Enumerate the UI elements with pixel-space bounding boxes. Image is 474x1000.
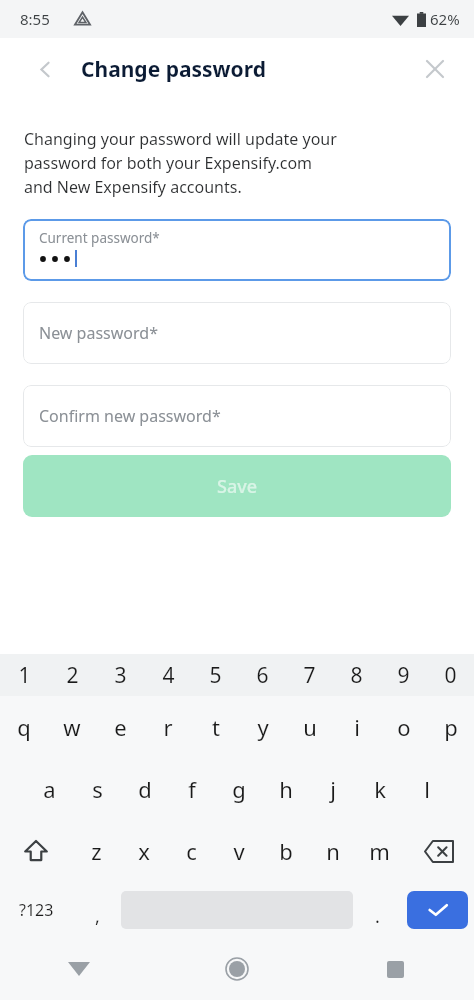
- button[interactable]: Back: [28, 52, 62, 86]
- staticText: w: [63, 712, 81, 742]
- staticText: g: [232, 774, 246, 804]
- button[interactable]: e: [96, 696, 144, 758]
- staticText: Current password*: [39, 229, 160, 247]
- button[interactable]: ,: [73, 882, 121, 938]
- button[interactable]: v: [215, 820, 262, 882]
- staticText: ,: [95, 904, 100, 929]
- button[interactable]: o: [380, 696, 427, 758]
- button[interactable]: 7: [286, 654, 333, 696]
- staticText: Change password: [81, 55, 266, 84]
- button[interactable]: m: [356, 820, 403, 882]
- staticText: 8: [350, 661, 363, 690]
- button[interactable]: i: [333, 696, 380, 758]
- button[interactable]: ?123: [0, 882, 73, 938]
- button[interactable]: New password*: [23, 302, 451, 364]
- button[interactable]: t: [192, 696, 239, 758]
- staticText: 2: [66, 661, 79, 690]
- button[interactable]: j: [309, 758, 356, 820]
- button[interactable]: Save: [23, 455, 451, 517]
- button[interactable]: 3: [96, 654, 144, 696]
- button[interactable]: .: [353, 882, 401, 938]
- staticText: 0: [444, 661, 457, 690]
- staticText: 4: [162, 661, 175, 690]
- button[interactable]: Recents: [316, 938, 474, 1000]
- staticText: Changing your password will update your …: [24, 128, 337, 198]
- staticText: j: [330, 774, 336, 804]
- button[interactable]: Close: [418, 52, 452, 86]
- button[interactable]: 0: [427, 654, 474, 696]
- staticText: New password*: [39, 322, 158, 344]
- staticText: z: [91, 836, 102, 866]
- staticText: q: [17, 712, 31, 742]
- button[interactable]: Back: [0, 938, 158, 1000]
- staticText: c: [186, 836, 197, 866]
- staticText: o: [397, 712, 411, 742]
- button[interactable]: Backspace: [403, 820, 474, 882]
- staticText: e: [114, 712, 127, 742]
- button[interactable]: z: [72, 820, 120, 882]
- staticText: n: [326, 836, 340, 866]
- staticText: f: [188, 774, 196, 804]
- button[interactable]: 4: [144, 654, 192, 696]
- staticText: x: [138, 836, 150, 866]
- staticText: d: [138, 774, 152, 804]
- staticText: 9: [397, 661, 410, 690]
- staticText: h: [279, 774, 293, 804]
- button[interactable]: 5: [192, 654, 239, 696]
- staticText: i: [354, 712, 360, 742]
- staticText: a: [43, 774, 56, 804]
- button[interactable]: r: [144, 696, 192, 758]
- button[interactable]: 6: [239, 654, 286, 696]
- button[interactable]: l: [403, 758, 450, 820]
- staticText: 7: [303, 661, 316, 690]
- button[interactable]: u: [286, 696, 333, 758]
- staticText: Save: [217, 474, 258, 499]
- button[interactable]: b: [262, 820, 309, 882]
- button[interactable]: x: [120, 820, 168, 882]
- staticText: l: [424, 774, 430, 804]
- staticText: 5: [209, 661, 222, 690]
- staticText: y: [257, 712, 269, 742]
- button[interactable]: Enter: [407, 891, 468, 929]
- button[interactable]: c: [168, 820, 215, 882]
- button[interactable]: p: [427, 696, 474, 758]
- staticText: m: [369, 836, 390, 866]
- staticText: r: [163, 712, 173, 742]
- button[interactable]: y: [239, 696, 286, 758]
- staticText: b: [279, 836, 293, 866]
- button[interactable]: 9: [380, 654, 427, 696]
- button[interactable]: 8: [333, 654, 380, 696]
- staticText: s: [92, 774, 103, 804]
- button[interactable]: Current password*: [23, 219, 451, 281]
- staticText: 62%: [430, 9, 460, 29]
- button[interactable]: s: [73, 758, 121, 820]
- button[interactable]: w: [48, 696, 96, 758]
- button[interactable]: k: [356, 758, 403, 820]
- button[interactable]: q: [0, 696, 48, 758]
- staticText: .: [375, 904, 380, 929]
- button[interactable]: 1: [0, 654, 48, 696]
- staticText: u: [303, 712, 317, 742]
- staticText: 1: [18, 661, 31, 690]
- button[interactable]: g: [215, 758, 262, 820]
- staticText: ?123: [19, 899, 54, 921]
- staticText: v: [233, 836, 245, 866]
- button[interactable]: 2: [48, 654, 96, 696]
- button[interactable]: h: [262, 758, 309, 820]
- button[interactable]: d: [121, 758, 168, 820]
- button[interactable]: f: [168, 758, 215, 820]
- staticText: 6: [256, 661, 269, 690]
- staticText: Confirm new password*: [39, 405, 221, 427]
- button[interactable]: Confirm new password*: [23, 385, 451, 447]
- staticText: p: [444, 712, 458, 742]
- staticText: k: [374, 774, 386, 804]
- staticText: 3: [114, 661, 127, 690]
- button[interactable]: Home: [158, 938, 316, 1000]
- staticText: 8:55: [20, 9, 50, 29]
- button[interactable]: n: [309, 820, 356, 882]
- button[interactable]: Shift: [0, 820, 72, 882]
- button[interactable]: a: [25, 758, 73, 820]
- staticText: t: [212, 712, 220, 742]
